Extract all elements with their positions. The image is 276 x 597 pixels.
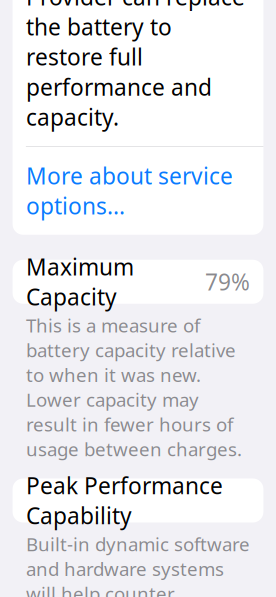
button[interactable]: More about service options... <box>13 147 263 235</box>
staticText: Built-in dynamic software and hardware s… <box>26 531 250 597</box>
staticText: 79% <box>205 267 250 297</box>
button[interactable]: Maximum Capacity <box>13 260 263 304</box>
staticText: This is a measure of battery capacity re… <box>26 313 242 461</box>
staticText: Maximum Capacity <box>26 252 134 312</box>
staticText: Your battery’s health is significantly d… <box>26 0 246 132</box>
staticText: More about service options... <box>26 161 233 221</box>
staticText: Peak Performance Capability <box>26 470 223 531</box>
